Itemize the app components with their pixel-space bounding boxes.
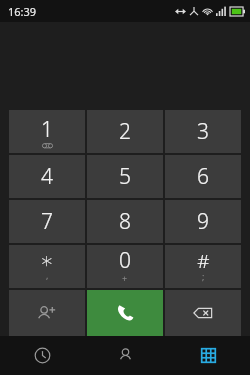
- button[interactable]: 5: [87, 155, 163, 198]
- staticText: +: [122, 272, 128, 284]
- staticText: 0: [119, 246, 131, 275]
- staticText: 8: [119, 207, 131, 236]
- staticText: 3: [197, 117, 209, 146]
- staticText: 7: [41, 207, 53, 236]
- button[interactable]: 1: [9, 110, 85, 153]
- button[interactable]: 0: [87, 245, 163, 288]
- staticText: ∗: [40, 248, 54, 274]
- staticText: ;: [202, 270, 205, 282]
- button[interactable]: Call: [87, 290, 163, 336]
- button[interactable]: Keypad: [167, 336, 250, 375]
- staticText: 4: [41, 162, 53, 191]
- button[interactable]: Contacts: [84, 336, 167, 375]
- button[interactable]: Add contact: [9, 290, 85, 336]
- staticText: 2: [119, 117, 131, 146]
- staticText: #: [197, 248, 210, 274]
- button[interactable]: Recents: [0, 336, 84, 375]
- button[interactable]: 2: [87, 110, 163, 153]
- button[interactable]: 8: [87, 200, 163, 243]
- staticText: 6: [197, 162, 209, 191]
- button[interactable]: #: [165, 245, 241, 288]
- staticText: ,: [46, 269, 49, 281]
- staticText: 16:39: [8, 4, 37, 19]
- button[interactable]: 6: [165, 155, 241, 198]
- button[interactable]: 9: [165, 200, 241, 243]
- staticText: 9: [197, 207, 209, 236]
- button[interactable]: 3: [165, 110, 241, 153]
- staticText: 1: [41, 115, 53, 144]
- button[interactable]: 7: [9, 200, 85, 243]
- button[interactable]: ∗: [9, 245, 85, 288]
- button[interactable]: Backspace: [165, 290, 241, 336]
- staticText: 5: [119, 162, 131, 191]
- button[interactable]: 4: [9, 155, 85, 198]
